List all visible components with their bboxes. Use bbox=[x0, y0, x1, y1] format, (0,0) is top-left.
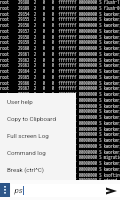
staticText: root 29376 2 0 0 ffffffff 00000000 S kwo… bbox=[0, 136, 120, 143]
staticText: root 29354 2 0 0 ffffffff 00000000 S kwo… bbox=[0, 10, 120, 17]
button[interactable]: User help bbox=[0, 93, 76, 110]
staticText: root 29378 2 0 0 ffffffff 00000000 S kwo… bbox=[0, 148, 120, 155]
staticText: root 29368 2 0 0 ffffffff 00000000 S kwo… bbox=[0, 90, 120, 97]
staticText: root 29360 2 0 0 ffffffff 00000000 S kwo… bbox=[0, 44, 120, 51]
staticText: root 29355 2 0 0 ffffffff 00000000 S kwo… bbox=[0, 15, 120, 22]
staticText: User help bbox=[7, 98, 33, 105]
staticText: root 29381 2 0 0 ffffffff 00000000 S kwo… bbox=[0, 165, 120, 172]
staticText: root 29364 2 0 0 ffffffff 00000000 S kwo… bbox=[0, 67, 120, 74]
staticText: root 29389 2 0 0 ffffffff 00000000 S flu… bbox=[0, 4, 120, 11]
staticText: Break (ctrl^C) bbox=[7, 166, 44, 173]
button[interactable]: Keyboard bbox=[0, 183, 10, 197]
staticText: root 29371 2 0 0 ffffffff 00000000 S kwo… bbox=[0, 107, 120, 114]
staticText: root 29385 2 0 0 ffffffff 00000000 S kwo… bbox=[0, 194, 120, 200]
button[interactable]: Command log bbox=[0, 144, 76, 161]
button[interactable]: Send bbox=[102, 183, 120, 199]
staticText: root 29359 2 0 0 ffffffff 00000000 S kwo… bbox=[0, 38, 120, 45]
staticText: root 29363 2 0 0 ffffffff 00000000 S kwo… bbox=[0, 61, 120, 68]
staticText: root 29375 2 0 0 ffffffff 00000000 S kwo… bbox=[0, 130, 120, 137]
staticText: root 29365 2 0 0 ffffffff 00000000 S kwo… bbox=[0, 73, 120, 80]
staticText: Full screen Log bbox=[7, 132, 49, 139]
staticText: root 29374 2 0 0 ffffffff 00000000 S kwo… bbox=[0, 125, 120, 132]
staticText: root 29377 2 0 0 ffffffff 00000000 S kwo… bbox=[0, 142, 120, 149]
staticText: Copy to Clipboard bbox=[7, 115, 56, 122]
button[interactable]: Full screen Log bbox=[0, 127, 76, 144]
staticText: root 29356 2 0 0 ffffffff 00000000 S kwo… bbox=[0, 21, 120, 28]
staticText: Command log bbox=[7, 149, 46, 156]
staticText: root 29369 2 0 0 ffffffff 00000000 S kwo… bbox=[0, 96, 120, 103]
staticText: root 29388 2 0 0 ffffffff 00000000 S flu… bbox=[0, 0, 120, 5]
staticText: root 29383 2 0 0 ffffffff 00000000 S kwo… bbox=[0, 182, 120, 189]
staticText: root 29373 2 0 0 ffffffff 00000000 S kwo… bbox=[0, 119, 120, 126]
staticText: root 29380 2 0 0 ffffffff 00000000 S kwo… bbox=[0, 159, 120, 166]
staticText: root 29370 2 0 0 ffffffff 00000000 S kwo… bbox=[0, 102, 120, 109]
staticText: ps bbox=[14, 186, 23, 195]
staticText: root 29362 2 0 0 ffffffff 00000000 S kwo… bbox=[0, 56, 120, 63]
staticText: root 29361 2 0 0 ffffffff 00000000 S kwo… bbox=[0, 50, 120, 57]
staticText: root 29367 2 0 0 ffffffff 00000000 S kwo… bbox=[0, 84, 120, 91]
staticText: root 29358 2 0 0 ffffffff 00000000 S kwo… bbox=[0, 33, 120, 40]
staticText: root 29384 2 0 0 ffffffff 00000000 S kwo… bbox=[0, 188, 120, 195]
staticText: root 29366 2 0 0 ffffffff 00000000 S kwo… bbox=[0, 79, 120, 86]
staticText: root 415 2 0 0 ffffffff 00000000 S sdcar… bbox=[0, 176, 120, 183]
staticText: root 29357 2 0 0 ffffffff 00000000 S kwo… bbox=[0, 27, 120, 34]
staticText: root 29372 2 0 0 ffffffff 00000000 S kwo… bbox=[0, 113, 120, 120]
button[interactable]: ps bbox=[11, 184, 120, 197]
button[interactable]: Copy to Clipboard bbox=[0, 110, 76, 127]
staticText: root 29382 2 0 0 ffffffff 00000000 S kso… bbox=[0, 171, 120, 178]
staticText: root 29379 2 0 0 ffffffff 00000000 S mig… bbox=[0, 153, 120, 160]
button[interactable]: Break (ctrl^C) bbox=[0, 161, 76, 178]
